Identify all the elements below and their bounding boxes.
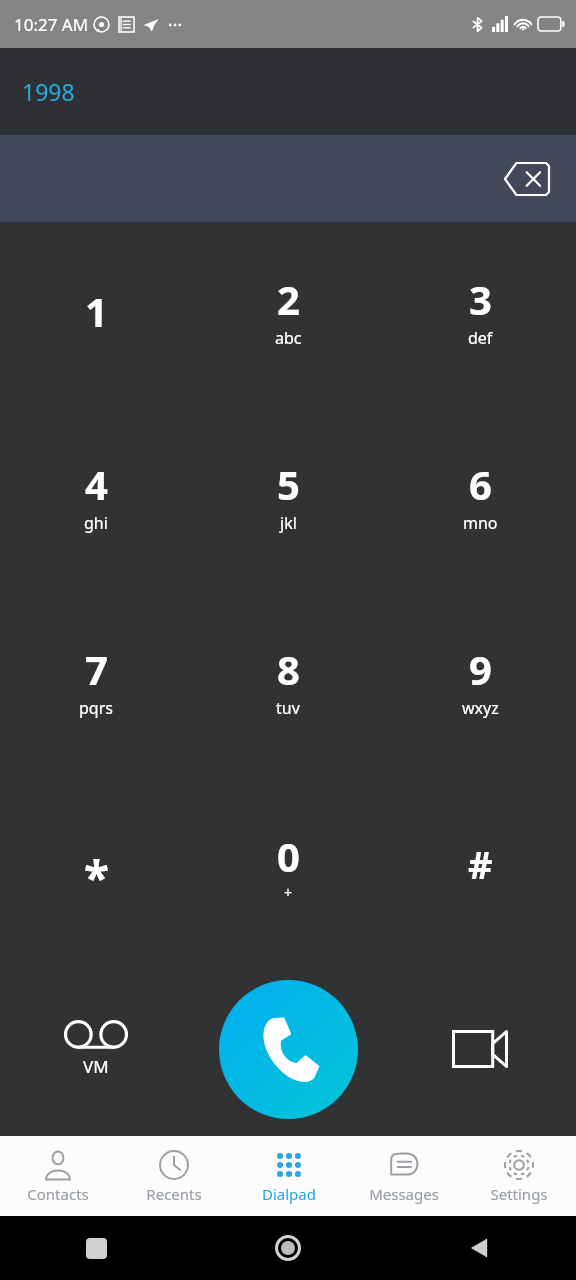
button[interactable]: # xyxy=(384,777,576,962)
button[interactable]: 3 xyxy=(384,222,576,407)
staticText: ghi xyxy=(84,512,108,534)
staticText: 5 xyxy=(277,457,300,511)
staticText: 2 xyxy=(277,272,300,326)
button[interactable]: Recents xyxy=(116,1136,231,1216)
staticText: Messages xyxy=(369,1184,439,1204)
button[interactable]: Recent apps xyxy=(0,1216,192,1280)
staticText: wxyz xyxy=(462,697,499,719)
staticText: 1 xyxy=(85,284,108,338)
staticText: 1998 xyxy=(22,76,75,107)
button[interactable]: 7 xyxy=(0,592,192,777)
staticText: Settings xyxy=(490,1184,548,1204)
staticText: 9 xyxy=(469,642,492,696)
button[interactable]: 6 xyxy=(384,407,576,592)
button[interactable]: Video call xyxy=(384,962,576,1136)
staticText: Dialpad xyxy=(262,1184,316,1204)
button[interactable]: Home xyxy=(192,1216,384,1280)
staticText: # xyxy=(468,838,493,890)
button[interactable]: 4 xyxy=(0,407,192,592)
button[interactable]: Messages xyxy=(346,1136,461,1216)
button[interactable]: Call xyxy=(219,980,358,1119)
staticText: 0 xyxy=(277,829,300,883)
staticText: abc xyxy=(275,327,302,349)
staticText: + xyxy=(284,883,293,902)
staticText: tuv xyxy=(276,697,300,719)
button[interactable]: 2 xyxy=(192,222,384,407)
staticText: Recents xyxy=(146,1184,202,1204)
staticText: jkl xyxy=(280,512,297,534)
button[interactable]: * xyxy=(0,777,192,962)
staticText: 8 xyxy=(277,642,300,696)
button[interactable]: 8 xyxy=(192,592,384,777)
button[interactable]: 1 xyxy=(0,222,192,407)
staticText: mno xyxy=(463,512,498,534)
button[interactable]: Backspace xyxy=(496,148,558,210)
button[interactable]: Settings xyxy=(461,1136,576,1216)
staticText: pqrs xyxy=(79,697,113,719)
staticText: 6 xyxy=(469,457,492,511)
staticText: * xyxy=(84,846,109,909)
button[interactable]: Contacts xyxy=(0,1136,116,1216)
staticText: 4 xyxy=(85,457,108,511)
staticText: VM xyxy=(83,1055,109,1078)
staticText: 7 xyxy=(85,642,108,696)
staticText: def xyxy=(468,327,493,349)
button[interactable]: Voicemail xyxy=(0,962,192,1136)
staticText: 10:27 AM xyxy=(14,13,89,36)
button[interactable]: Dialpad xyxy=(231,1136,346,1216)
staticText: 3 xyxy=(469,272,492,326)
button[interactable]: 5 xyxy=(192,407,384,592)
button[interactable]: Back xyxy=(384,1216,576,1280)
button[interactable]: 9 xyxy=(384,592,576,777)
button[interactable]: 0 xyxy=(192,777,384,962)
staticText: Contacts xyxy=(27,1184,89,1204)
